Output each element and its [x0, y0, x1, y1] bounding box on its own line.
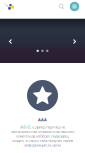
button[interactable]: Menu [68, 0, 81, 13]
button[interactable]: Slide 2 [41, 50, 44, 52]
button[interactable]: Slide 1 [36, 50, 39, 52]
button[interactable]: Next slide [69, 35, 80, 47]
staticText: ААА [38, 117, 47, 122]
button[interactable]: Previous slide [5, 35, 16, 47]
button[interactable]: Search [55, 0, 68, 13]
button[interactable]: Home [3, 0, 16, 13]
button[interactable]: Slide 3 [46, 50, 48, 52]
staticText: АВ-EL е дилер партнер на автосалон.сом и… [11, 124, 74, 148]
